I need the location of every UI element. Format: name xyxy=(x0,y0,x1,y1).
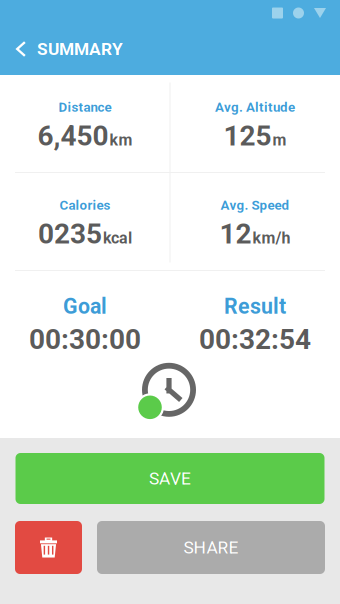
staticText: Result xyxy=(224,294,286,319)
staticText: 12 xyxy=(219,218,251,250)
staticText: SHARE xyxy=(183,537,238,558)
staticText: 125 xyxy=(223,120,271,152)
staticText: Goal xyxy=(63,294,107,319)
staticText: Calories xyxy=(59,197,110,213)
staticText: SAVE xyxy=(149,468,191,489)
staticText: m xyxy=(272,131,286,149)
button[interactable]: SAVE xyxy=(15,453,324,504)
staticText: 00:30:00 xyxy=(29,323,141,356)
button[interactable]: SUMMARY xyxy=(0,26,139,75)
staticText: kcal xyxy=(103,229,132,247)
staticText: Avg. Speed xyxy=(220,197,289,213)
button[interactable]: Delete xyxy=(15,521,82,574)
staticText: km/h xyxy=(252,229,290,247)
staticText: 00:32:54 xyxy=(199,323,311,356)
staticText: km xyxy=(109,131,132,149)
button[interactable]: SHARE xyxy=(97,521,325,574)
staticText: SUMMARY xyxy=(37,39,123,59)
staticText: Distance xyxy=(58,99,111,115)
staticText: 6,450 xyxy=(37,120,108,152)
staticText: Avg. Altitude xyxy=(215,99,295,115)
staticText: 0235 xyxy=(38,218,102,250)
